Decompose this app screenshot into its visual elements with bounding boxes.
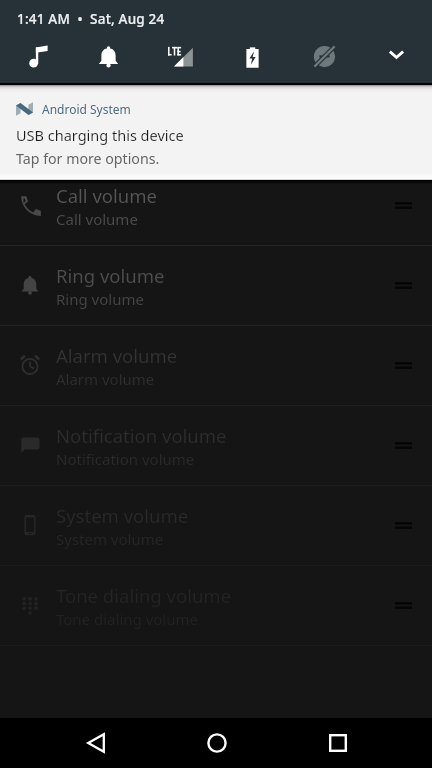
staticText: Alarm volume [56, 369, 155, 389]
staticText: Ring volume [56, 289, 144, 309]
button[interactable]: Ring volume [0, 246, 432, 326]
button[interactable]: Do not disturb [288, 38, 360, 85]
button[interactable]: Battery [216, 38, 288, 85]
staticText: System volume [56, 503, 189, 528]
staticText: Android System [42, 101, 131, 117]
button[interactable]: Alarm volume [0, 326, 432, 406]
button[interactable]: Sound [0, 38, 72, 85]
staticText: Call volume [56, 209, 138, 229]
staticText: Notification volume [56, 449, 195, 469]
staticText: Call volume [56, 183, 157, 208]
button[interactable]: Back [35, 718, 156, 768]
button[interactable]: Expand [360, 38, 432, 85]
button[interactable]: Notification volume [0, 406, 432, 486]
staticText: Notification volume [56, 423, 227, 448]
button[interactable]: Android System [0, 85, 432, 180]
button[interactable]: Home [156, 718, 277, 768]
button[interactable]: Recent apps [277, 718, 398, 768]
staticText: System volume [56, 529, 164, 549]
staticText: USB charging this device [16, 125, 184, 145]
staticText: Tap for more options. [16, 149, 160, 168]
staticText: 1:41 AM • Sat, Aug 24 [17, 10, 165, 28]
button[interactable]: Notifications [72, 38, 144, 85]
button[interactable]: Call volume [0, 166, 432, 246]
staticText: Tone dialing volume [56, 583, 232, 608]
button[interactable]: Mobile data [144, 38, 216, 85]
staticText: Alarm volume [56, 343, 178, 368]
staticText: Tone dialing volume [56, 609, 198, 629]
staticText: Ring volume [56, 263, 165, 288]
